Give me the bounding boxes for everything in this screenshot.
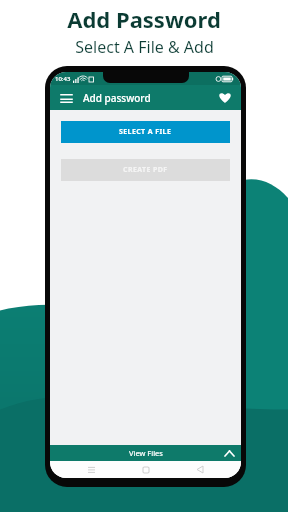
button[interactable]: Favorites: [216, 89, 234, 107]
button[interactable]: Home: [133, 461, 159, 478]
staticText: Select A File & Add: [75, 36, 214, 58]
staticText: Add password: [83, 91, 151, 105]
staticText: CREATE PDF: [123, 165, 168, 175]
button[interactable]: View Files: [50, 445, 241, 461]
button[interactable]: Open navigation menu: [57, 89, 75, 107]
button[interactable]: Back: [187, 461, 213, 478]
button[interactable]: SELECT A FILE: [61, 121, 230, 143]
staticText: View Files: [129, 448, 163, 458]
staticText: Add Password: [67, 4, 221, 34]
button[interactable]: CREATE PDF: [61, 159, 230, 181]
staticText: 10:43: [55, 75, 71, 83]
button[interactable]: Recent apps: [78, 461, 104, 478]
staticText: SELECT A FILE: [119, 127, 172, 137]
